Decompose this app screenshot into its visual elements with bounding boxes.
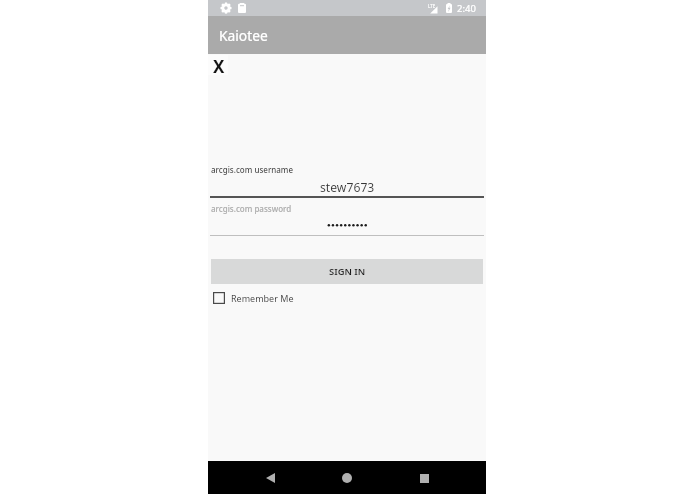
staticText: 2:40 xyxy=(457,2,476,15)
staticText: Remember Me xyxy=(231,292,294,304)
button[interactable]: Recent apps xyxy=(409,463,439,493)
button[interactable]: Home xyxy=(332,463,362,493)
staticText: SIGN IN xyxy=(329,265,366,278)
button[interactable]: Remember Me xyxy=(213,289,294,307)
button[interactable]: arcgis.com username xyxy=(210,162,484,198)
staticText: X xyxy=(213,55,225,75)
button[interactable]: arcgis.com password xyxy=(210,201,484,236)
button[interactable]: Close xyxy=(208,55,228,75)
staticText: arcgis.com username xyxy=(211,164,294,175)
button[interactable]: SIGN IN xyxy=(211,259,483,284)
button[interactable]: Back xyxy=(255,463,285,493)
staticText: Kaiotee xyxy=(219,26,268,45)
staticText: stew7673 xyxy=(320,179,375,196)
staticText: arcgis.com password xyxy=(211,203,292,214)
staticText: LTE xyxy=(428,3,436,9)
